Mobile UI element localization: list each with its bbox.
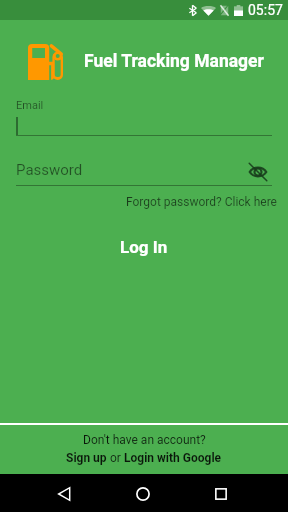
button[interactable]: Forgot password? Click here <box>115 193 288 211</box>
button[interactable]: Home <box>125 476 160 511</box>
staticText: Password <box>16 161 248 179</box>
staticText: Email <box>16 99 44 112</box>
button[interactable]: Login with Google <box>124 451 222 465</box>
staticText: Forgot password? Click here <box>126 195 277 209</box>
staticText: 05:57 <box>248 2 283 18</box>
button[interactable]: Sign up <box>66 451 107 465</box>
button[interactable]: Log In <box>0 230 288 264</box>
staticText: Don't have an account? <box>83 433 206 447</box>
staticText: Fuel Tracking Manager <box>84 51 264 72</box>
button[interactable]: Back <box>47 476 82 511</box>
staticText: or <box>107 451 124 465</box>
staticText: Log In <box>120 237 168 257</box>
button[interactable]: Recent apps <box>203 476 238 511</box>
button[interactable]: Show password <box>248 158 272 182</box>
